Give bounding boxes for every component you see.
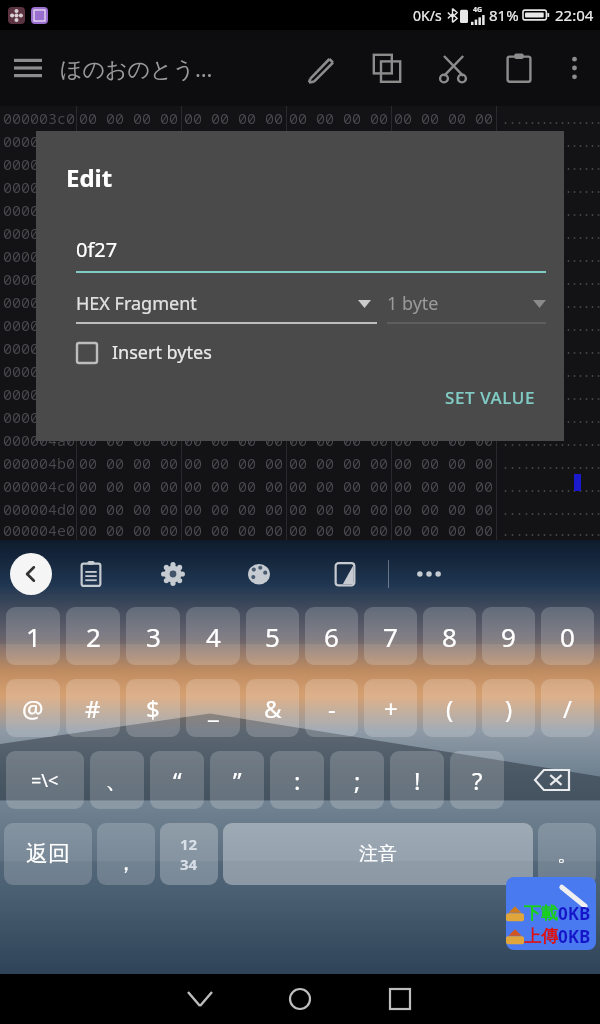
staticText: 00 00 00 00 [79, 223, 179, 243]
staticText: 9 [501, 619, 516, 654]
button[interactable]: Resize [302, 545, 388, 603]
button[interactable]: Paste [486, 40, 552, 96]
button[interactable]: Network traffic [506, 877, 596, 950]
staticText: . [508, 315, 515, 335]
staticText: . [588, 338, 594, 358]
button[interactable]: “ [150, 751, 204, 809]
button[interactable]: 1 [6, 607, 60, 665]
staticText: . [528, 476, 534, 496]
button[interactable]: 0 [541, 607, 594, 665]
button[interactable]: Numbers [160, 823, 218, 885]
button[interactable]: Copy [354, 40, 420, 96]
button[interactable]: ) [482, 679, 535, 737]
staticText: 注音 [359, 842, 397, 866]
button[interactable]: SET VALUE [437, 380, 544, 415]
staticText: . [534, 499, 540, 519]
staticText: . [594, 269, 600, 289]
button[interactable]: & [246, 679, 299, 737]
staticText: . [582, 407, 588, 427]
button[interactable]: 、 [90, 751, 144, 809]
button[interactable]: Clipboard [52, 545, 130, 603]
button[interactable]: Settings [130, 545, 216, 603]
staticText: . [576, 315, 582, 335]
button[interactable]: : [270, 751, 324, 809]
staticText: . [515, 453, 522, 473]
button[interactable]: More options [552, 40, 596, 96]
button[interactable]: Back [10, 553, 52, 595]
button[interactable]: Home [250, 974, 350, 1024]
staticText: . [582, 338, 588, 358]
staticText: . [546, 476, 552, 496]
button[interactable]: More [389, 545, 469, 603]
button[interactable]: ( [423, 679, 476, 737]
staticText: ! [414, 764, 421, 797]
staticText: . [515, 499, 522, 519]
button[interactable]: Menu [0, 40, 56, 96]
button[interactable]: 。 [538, 823, 596, 885]
button[interactable]: 4 [186, 607, 240, 665]
staticText: . [582, 361, 588, 381]
button[interactable]: @ [6, 679, 60, 737]
button[interactable]: $ [126, 679, 180, 737]
button[interactable]: ? [450, 751, 504, 809]
button[interactable]: Edit [288, 40, 354, 96]
button[interactable]: ; [330, 751, 384, 809]
staticText: . [582, 223, 588, 243]
button[interactable]: ” [210, 751, 264, 809]
button[interactable]: Backspace [510, 747, 594, 813]
staticText: 4 [206, 619, 221, 654]
button[interactable]: 6 [305, 607, 358, 665]
staticText: . [570, 269, 576, 289]
button[interactable]: 1 byte [387, 291, 546, 324]
button[interactable]: 8 [423, 607, 476, 665]
button[interactable]: Recents [350, 974, 450, 1024]
staticText: 00 00 00 00 [79, 269, 179, 289]
staticText: . [534, 292, 540, 312]
button[interactable]: ， [97, 823, 155, 885]
button[interactable]: 7 [364, 607, 417, 665]
staticText: . [515, 315, 522, 335]
button[interactable]: / [541, 679, 594, 737]
staticText: . [564, 154, 570, 174]
staticText: . [576, 131, 582, 151]
button[interactable]: 2 [66, 607, 120, 665]
button[interactable]: # [66, 679, 120, 737]
button[interactable]: Cut [420, 40, 486, 96]
button[interactable]: Hide keyboard [150, 974, 250, 1024]
staticText: . [588, 361, 594, 381]
button[interactable]: 9 [482, 607, 535, 665]
button[interactable]: 返回 [4, 823, 92, 885]
button[interactable]: 3 [126, 607, 180, 665]
staticText: 2 [86, 619, 101, 654]
staticText: 0 [560, 619, 575, 654]
button[interactable]: Theme [216, 545, 302, 603]
button[interactable]: - [305, 679, 358, 737]
button[interactable]: =\< [6, 751, 84, 809]
button[interactable]: ! [390, 751, 444, 809]
button[interactable]: Insert bytes [76, 340, 212, 365]
button[interactable]: 5 [246, 607, 299, 665]
staticText: . [594, 177, 600, 197]
staticText: : [294, 764, 301, 797]
staticText: 1 byte [387, 291, 533, 316]
button[interactable]: HEX Fragment [76, 291, 377, 324]
button[interactable]: 注音 [223, 823, 533, 885]
button[interactable]: + [364, 679, 417, 737]
staticText: . [594, 223, 600, 243]
button[interactable]: _ [186, 679, 240, 737]
